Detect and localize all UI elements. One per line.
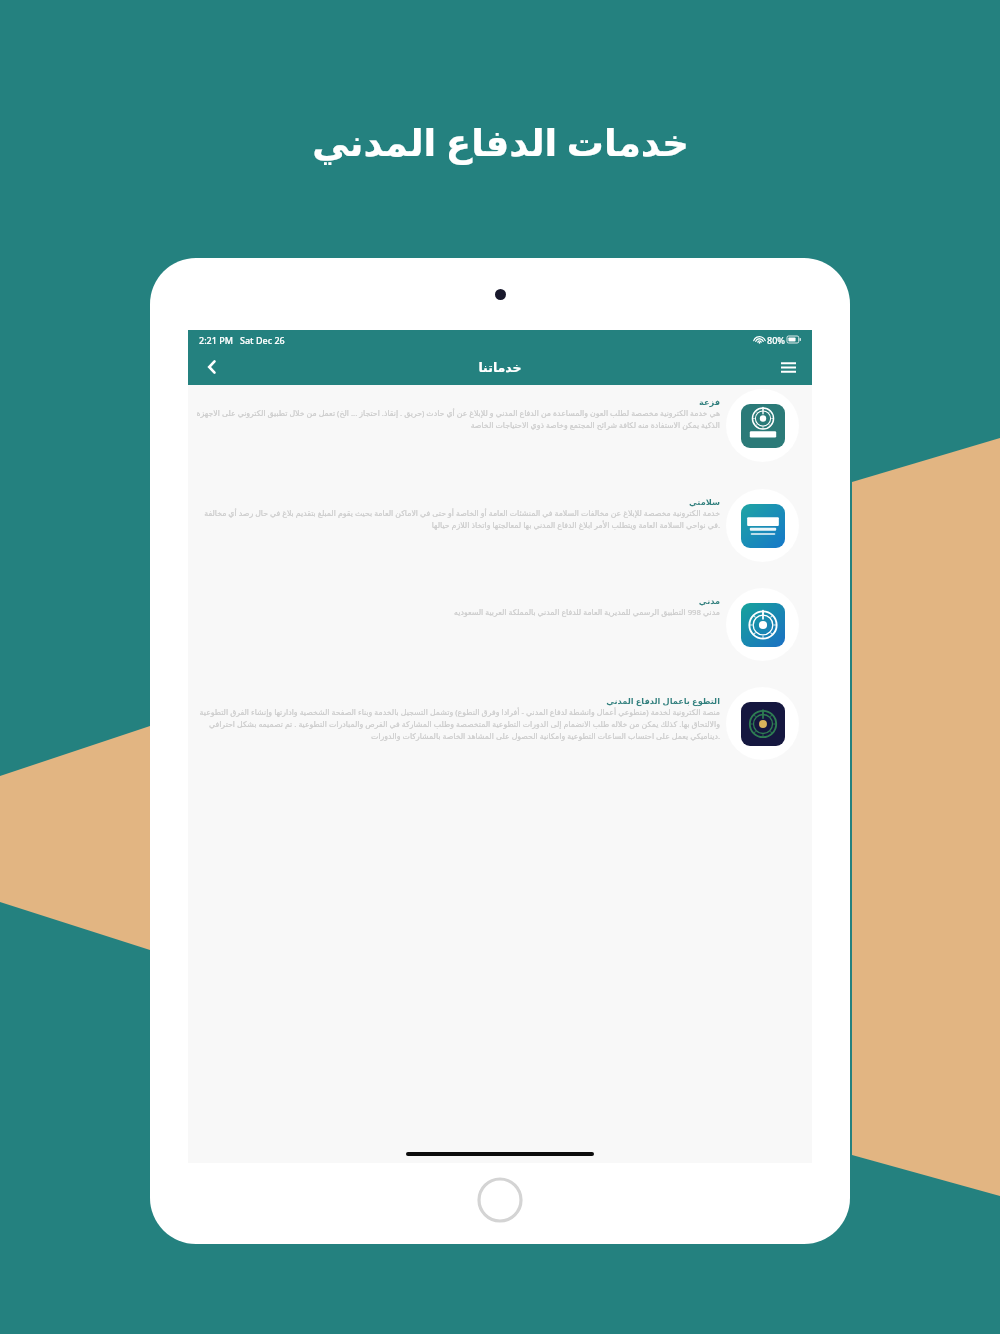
staticText: مدني 998 التطبيق الرسمي للمديرية العامة … xyxy=(196,607,720,618)
staticText: التطوع باعمال الدفاع المدني xyxy=(196,695,720,706)
staticText: مدني xyxy=(196,596,720,606)
staticText: منصة الكترونية لخدمة (منطوعي أعمال وانشط… xyxy=(196,707,720,741)
staticText: خدماتنا xyxy=(478,360,522,375)
button[interactable]: سلامتي xyxy=(188,485,812,584)
staticText: خدمة الكترونية مخصصة للإبلاغ عن مخالفات … xyxy=(196,508,720,530)
staticText: 80% xyxy=(767,334,785,346)
button[interactable]: Menu xyxy=(775,354,801,380)
staticText: سلامتي xyxy=(196,497,720,507)
button[interactable]: التطوع باعمال الدفاع المدني xyxy=(188,683,812,783)
button[interactable]: مدني xyxy=(188,584,812,683)
staticText: فزعة xyxy=(196,397,720,407)
staticText: خدمات الدفاع المدني xyxy=(312,116,689,166)
staticText: هي خدمة الكترونية مخصصة لطلب العون والمس… xyxy=(196,408,720,430)
button[interactable]: Back xyxy=(199,354,225,380)
staticText: 2:21 PM Sat Dec 26 xyxy=(199,334,285,346)
button[interactable]: فزعة xyxy=(188,385,812,485)
